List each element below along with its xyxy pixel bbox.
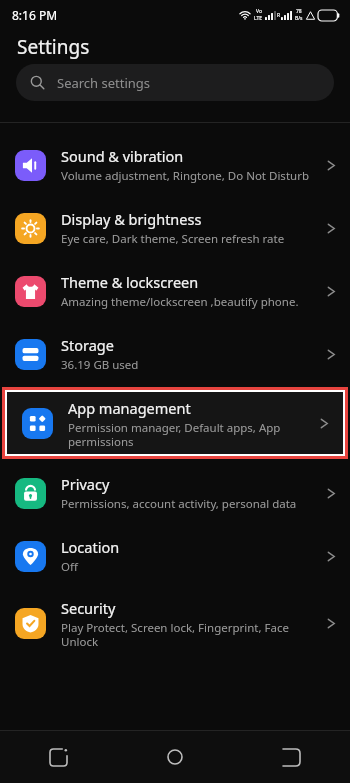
staticText: Location [61, 537, 120, 557]
button[interactable]: Search settings [16, 64, 334, 101]
staticText: B/s [295, 15, 303, 22]
button[interactable]: Back [233, 731, 350, 783]
staticText: 36.19 GB used [61, 357, 139, 373]
staticText: Search settings [57, 74, 151, 92]
button[interactable]: App management [7, 392, 343, 454]
staticText: Permissions, account activity, personal … [61, 496, 297, 512]
staticText: 8:16 PM [12, 7, 58, 23]
button[interactable]: Security [0, 587, 350, 659]
staticText: Eye care, Dark theme, Screen refresh rat… [61, 231, 285, 247]
staticText: Settings [17, 34, 90, 60]
button[interactable]: Recents [0, 731, 116, 783]
button[interactable]: Privacy [0, 461, 350, 524]
staticText: Off [61, 559, 78, 575]
button[interactable]: Sound & vibration [0, 133, 350, 196]
staticText: App management [68, 398, 191, 418]
button[interactable]: Home [116, 731, 233, 783]
staticText: Play Protect, Screen lock, Fingerprint, … [61, 620, 290, 649]
staticText: R [277, 12, 281, 19]
button[interactable]: Display & brightness [0, 196, 350, 259]
staticText: Volume adjustment, Ringtone, Do Not Dist… [61, 168, 309, 184]
staticText: LTE [254, 15, 263, 22]
button[interactable]: Storage [0, 322, 350, 385]
staticText: Vo [256, 8, 262, 15]
staticText: 78 [296, 8, 302, 15]
staticText: Permission manager, Default apps, App pe… [68, 420, 281, 449]
button[interactable]: Location [0, 524, 350, 587]
staticText: Sound & vibration [61, 146, 184, 166]
button[interactable]: Theme & lockscreen [0, 259, 350, 322]
staticText: Theme & lockscreen [61, 272, 199, 292]
staticText: Security [61, 598, 116, 618]
staticText: Storage [61, 335, 114, 355]
staticText: Amazing theme/lockscreen ,beautify phone… [61, 294, 299, 310]
staticText: Privacy [61, 474, 110, 494]
staticText: Display & brightness [61, 209, 202, 229]
